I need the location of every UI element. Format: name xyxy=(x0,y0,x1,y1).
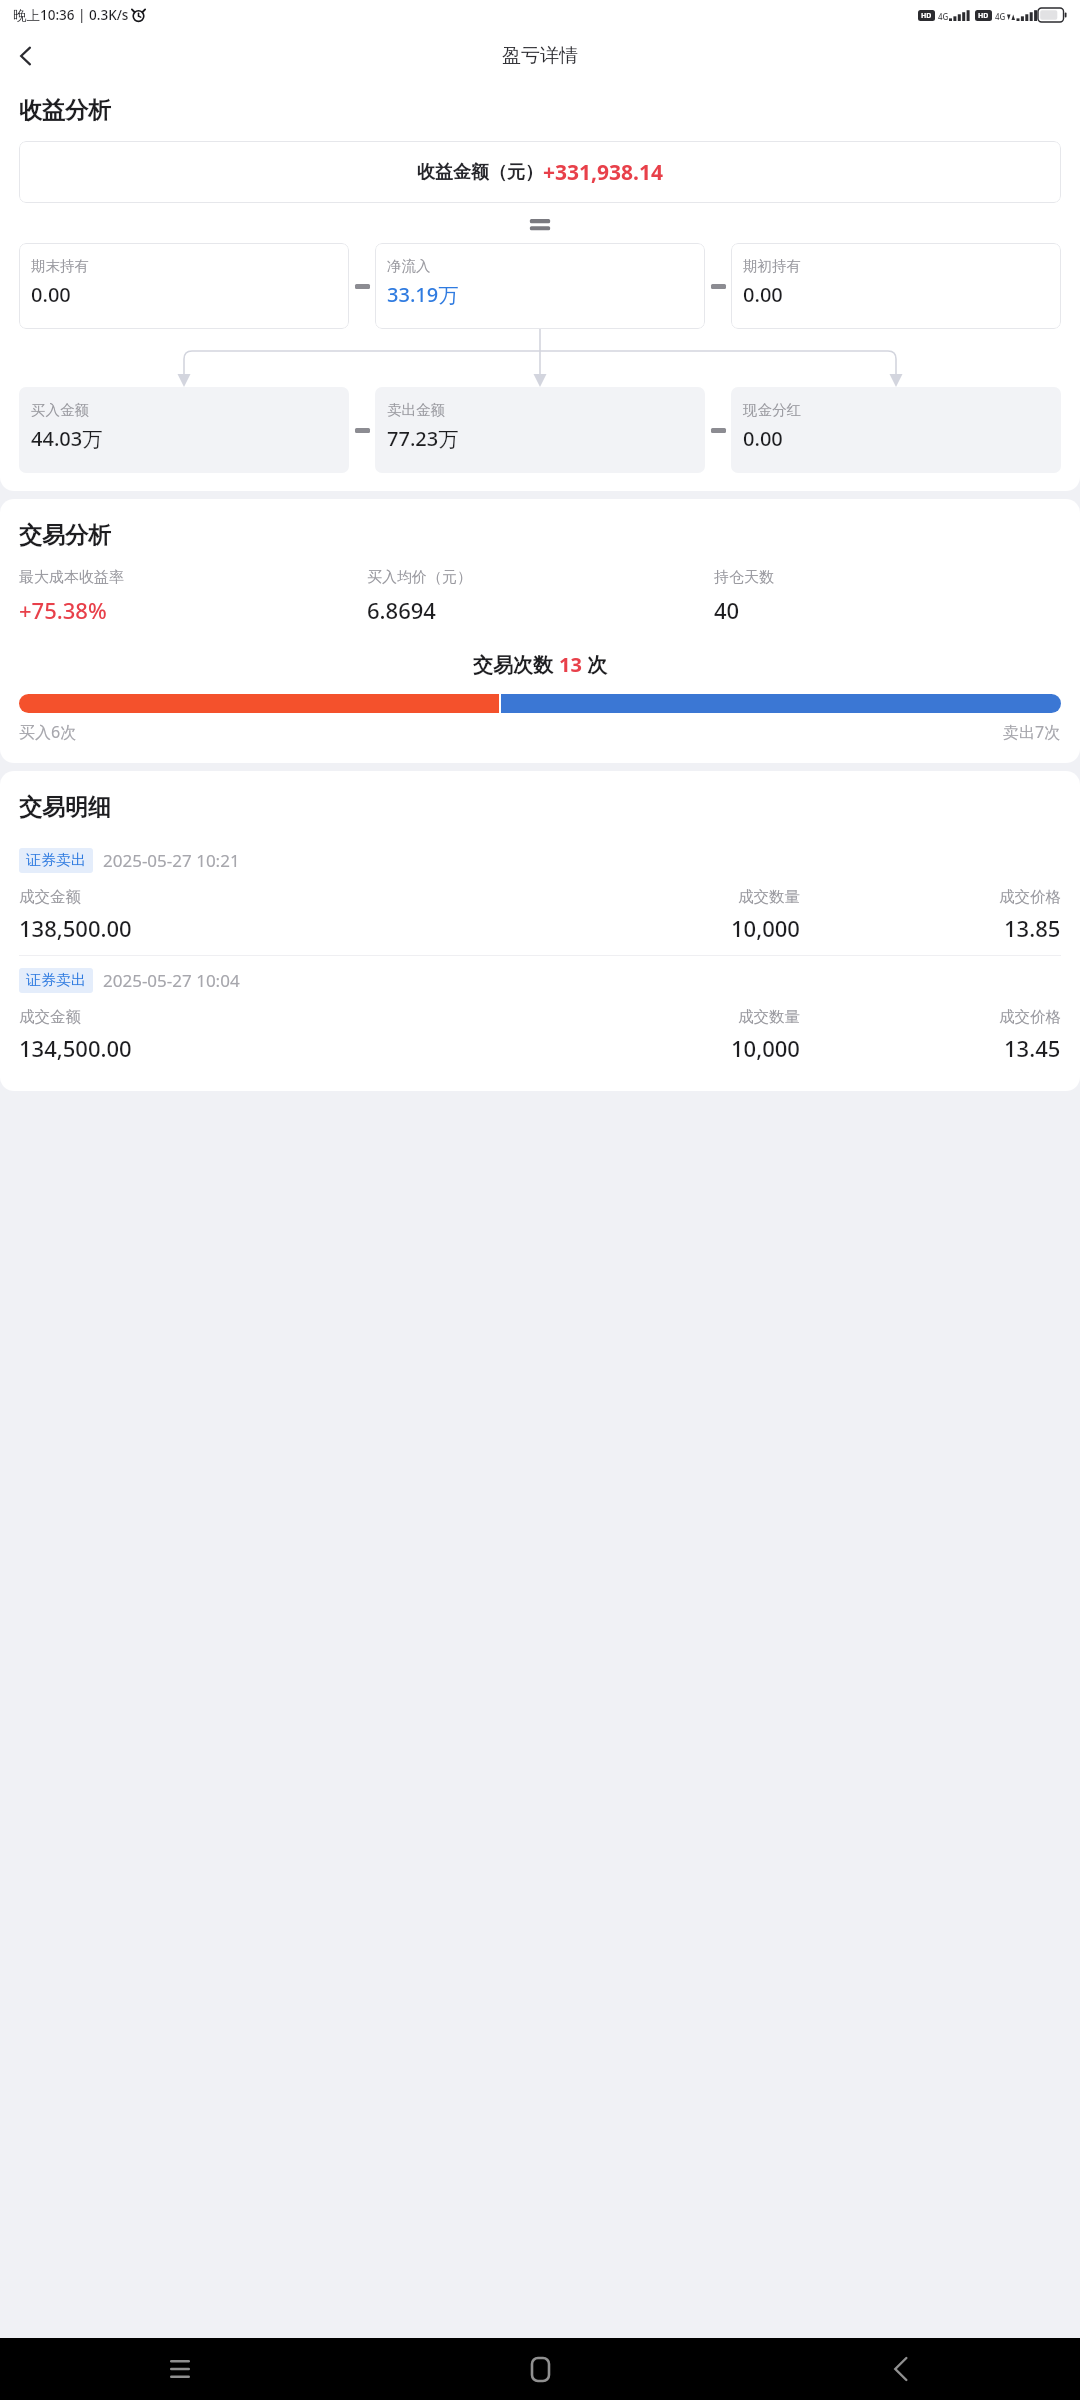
staticText: 证券卖出 xyxy=(26,851,86,870)
staticText: 买入金额 xyxy=(31,401,89,419)
staticText: 卖出7次 xyxy=(1003,721,1061,743)
staticText: 4G xyxy=(995,11,1006,22)
staticText: 成交价格 xyxy=(999,1007,1061,1027)
staticText: 2025-05-27 10:21 xyxy=(103,849,240,872)
staticText: 卖出金额 xyxy=(387,401,445,419)
staticText: 13.85 xyxy=(1004,913,1061,943)
staticText: 成交价格 xyxy=(999,887,1061,907)
staticText: 买入6次 xyxy=(19,721,77,743)
staticText: 收益分析 xyxy=(19,96,111,125)
button[interactable]: 现金分红 xyxy=(731,387,1061,473)
staticText: 现金分红 xyxy=(743,401,801,419)
staticText: 买入均价（元） xyxy=(367,568,472,587)
staticText: 134,500.00 xyxy=(19,1033,132,1063)
staticText: 13 xyxy=(559,651,582,678)
staticText: 4G xyxy=(938,11,949,22)
staticText: 成交金额 xyxy=(19,887,81,907)
button[interactable]: 证券卖出 xyxy=(0,956,1080,1075)
button[interactable]: 期末持有 xyxy=(19,243,349,329)
staticText: 成交数量 xyxy=(738,887,800,907)
staticText: 交易明细 xyxy=(19,793,111,822)
staticText: 0.00 xyxy=(743,281,783,308)
staticText: 77.23万 xyxy=(387,425,459,452)
staticText: 40 xyxy=(714,595,740,625)
staticText: 138,500.00 xyxy=(19,913,132,943)
staticText: HD xyxy=(978,11,989,21)
button[interactable]: 买入金额 xyxy=(19,387,349,473)
staticText: 盈亏详情 xyxy=(502,44,578,68)
staticText: 44.03万 xyxy=(31,425,103,452)
button[interactable]: 期初持有 xyxy=(731,243,1061,329)
button[interactable]: 净流入 xyxy=(375,243,705,329)
staticText: 最大成本收益率 xyxy=(19,568,124,587)
staticText: 6.8694 xyxy=(367,595,436,625)
button[interactable]: Back xyxy=(720,2338,1080,2400)
staticText: HD xyxy=(921,11,932,21)
staticText: 10,000 xyxy=(731,913,800,943)
staticText: 成交金额 xyxy=(19,1007,81,1027)
staticText: 33.19万 xyxy=(387,281,459,308)
staticText: +75.38% xyxy=(19,595,107,625)
staticText: 期末持有 xyxy=(31,257,89,275)
staticText: +331,938.14 xyxy=(543,158,663,187)
button[interactable]: 卖出金额 xyxy=(375,387,705,473)
button[interactable]: 证券卖出 xyxy=(0,836,1080,955)
staticText: 成交数量 xyxy=(738,1007,800,1027)
staticText: 0.00 xyxy=(743,425,783,452)
staticText: 净流入 xyxy=(387,257,431,275)
staticText: 13.45 xyxy=(1004,1033,1061,1063)
staticText: 晚上10:36 | 0.3K/s xyxy=(13,6,129,24)
button[interactable]: Recents xyxy=(0,2338,360,2400)
staticText: 收益金额（元） xyxy=(417,161,543,184)
staticText: 持仓天数 xyxy=(714,568,774,587)
staticText: 2025-05-27 10:04 xyxy=(103,969,240,992)
staticText: 0.00 xyxy=(31,281,71,308)
button[interactable]: Back xyxy=(0,30,52,82)
staticText: 交易次数 xyxy=(473,651,559,678)
staticText: 10,000 xyxy=(731,1033,800,1063)
staticText: 次 xyxy=(582,651,608,678)
button[interactable]: Home xyxy=(360,2338,720,2400)
staticText: 期初持有 xyxy=(743,257,801,275)
staticText: 证券卖出 xyxy=(26,971,86,990)
staticText: 交易分析 xyxy=(19,521,111,550)
